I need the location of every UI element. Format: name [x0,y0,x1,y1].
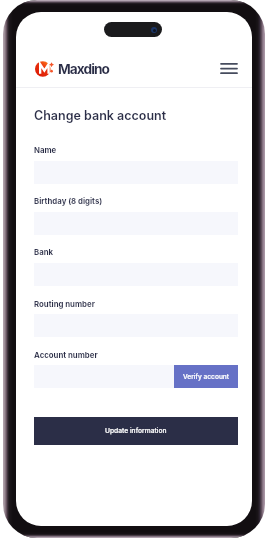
staticText: Bank [34,247,54,256]
staticText: Update information [105,427,167,435]
staticText: Change bank account [34,108,167,123]
staticText: Maxdino [58,61,109,78]
staticText: Name [34,145,57,154]
button[interactable]: Verify account [174,365,238,388]
button[interactable]: Maxdino [35,60,109,78]
staticText: Routing number [34,299,95,308]
staticText: Account number [34,350,98,359]
button[interactable]: Open navigation menu [218,57,240,79]
staticText: Birthday (8 digits) [34,196,103,205]
button[interactable]: Update information [34,417,238,445]
staticText: Verify account [183,373,230,381]
